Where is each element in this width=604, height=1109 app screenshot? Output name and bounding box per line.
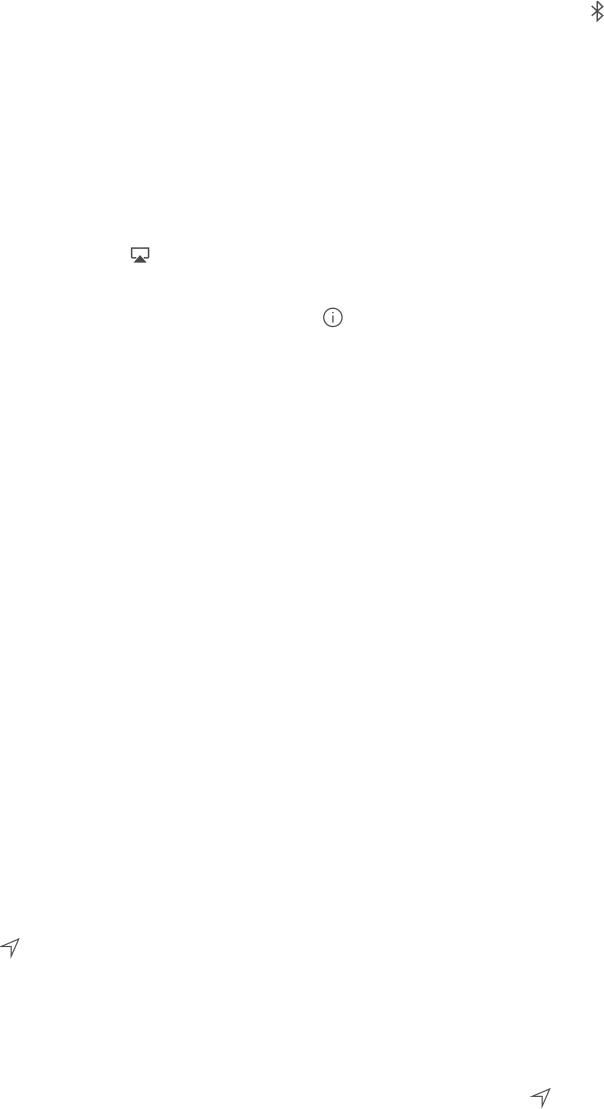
button[interactable]: Location xyxy=(1,938,19,956)
button[interactable]: Location xyxy=(532,1088,550,1106)
button[interactable]: Info xyxy=(323,308,343,327)
button[interactable]: Bluetooth xyxy=(592,1,603,21)
button[interactable]: AirPlay xyxy=(131,247,149,263)
